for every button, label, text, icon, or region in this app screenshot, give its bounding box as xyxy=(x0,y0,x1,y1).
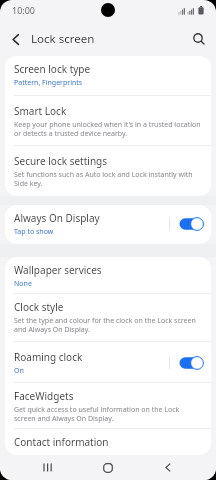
staticText: Roaming clock xyxy=(14,350,83,364)
staticText: 10:00 xyxy=(12,4,36,16)
staticText: Keep your phone unlocked when it's in a … xyxy=(14,120,201,138)
button[interactable]: Screen lock type xyxy=(5,56,211,95)
button[interactable] xyxy=(12,34,20,45)
button[interactable]: Roaming clock xyxy=(5,342,211,382)
staticText: Pattern, Fingerprints xyxy=(14,78,83,88)
button[interactable] xyxy=(146,455,190,480)
staticText: Get quick access to useful information o… xyxy=(14,405,180,423)
staticText: Always On Display xyxy=(14,211,100,225)
button[interactable]: Contact information xyxy=(5,429,211,455)
button[interactable]: Always On Display xyxy=(5,205,211,244)
staticText: Set the type and colour for the clock on… xyxy=(14,316,196,334)
staticText: Screen lock type xyxy=(14,62,91,76)
staticText: Contact information xyxy=(14,435,109,448)
button[interactable] xyxy=(26,455,70,480)
button[interactable]: Smart Lock xyxy=(5,96,211,145)
button[interactable] xyxy=(86,455,130,480)
staticText: Tap to show xyxy=(14,227,54,237)
staticText: Wallpaper services xyxy=(14,263,102,277)
staticText: None xyxy=(14,279,32,289)
staticText: Set functions such as Auto lock and Lock… xyxy=(14,170,193,188)
staticText: On xyxy=(14,366,24,376)
staticText: Smart Lock xyxy=(14,104,67,118)
button[interactable]: Secure lock settings xyxy=(5,146,211,196)
button[interactable]: Wallpaper services xyxy=(5,257,211,293)
button[interactable]: FaceWidgets xyxy=(5,383,211,428)
button[interactable] xyxy=(193,33,205,45)
staticText: Clock style xyxy=(14,300,64,314)
staticText: FaceWidgets xyxy=(14,389,74,403)
staticText: Secure lock settings xyxy=(14,154,107,168)
button[interactable]: Clock style xyxy=(5,294,211,341)
staticText: Lock screen xyxy=(31,31,95,47)
